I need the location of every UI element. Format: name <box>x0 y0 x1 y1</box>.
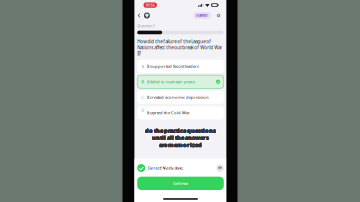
staticText: A. <box>141 64 144 69</box>
staticText: until all the answers <box>152 134 209 141</box>
staticText: until all the answers <box>152 134 209 142</box>
staticText: D. <box>141 108 144 118</box>
staticText: do the practice questions <box>145 127 216 135</box>
staticText: do the practice questions <box>145 127 216 135</box>
staticText: are memorized <box>159 141 202 149</box>
button[interactable]: C. <box>137 91 224 104</box>
staticText: are memorized <box>158 140 201 148</box>
staticText: It supported fascist leaders <box>147 63 199 69</box>
staticText: do the practice questions <box>145 127 216 134</box>
staticText: 09:56 <box>146 3 155 7</box>
staticText: Correct! Nicely done. <box>148 165 184 171</box>
staticText: until all the answers <box>153 133 210 141</box>
staticText: are memorized <box>158 141 201 148</box>
staticText: are memorized <box>159 140 202 148</box>
staticText: until all the answers <box>152 133 209 141</box>
staticText: until all the answers <box>152 133 209 141</box>
staticText: do the practice questions <box>145 127 216 134</box>
staticText: do the practice questions <box>145 127 216 134</box>
staticText: do the practice questions <box>145 127 216 134</box>
staticText: until all the answers <box>152 133 209 141</box>
staticText: do the practice questions <box>144 127 215 134</box>
staticText: do the practice questions <box>145 126 216 134</box>
staticText: do the practice questions <box>144 127 215 135</box>
staticText: until all the answers <box>153 134 210 142</box>
staticText: are memorized <box>159 141 202 149</box>
staticText: are memorized <box>158 141 201 149</box>
staticText: until all the answers <box>152 134 209 141</box>
button[interactable]: Back <box>134 10 153 20</box>
staticText: until all the answers <box>152 134 209 142</box>
staticText: do the practice questions <box>146 127 217 135</box>
staticText: do the practice questions <box>145 126 216 133</box>
staticText: are memorized <box>159 142 202 149</box>
staticText: C. <box>141 95 144 100</box>
button[interactable]: Explain answer <box>216 164 224 172</box>
staticText: until all the answers <box>152 133 209 141</box>
button[interactable]: D. <box>137 106 224 119</box>
staticText: until all the answers <box>152 134 209 142</box>
staticText: do the practice questions <box>145 126 216 133</box>
button[interactable]: SUBMIT <box>193 12 211 19</box>
staticText: Question 3 <box>137 23 155 28</box>
staticText: are memorized <box>159 142 202 149</box>
staticText: until all the answers <box>152 133 209 141</box>
staticText: are memorized <box>159 141 202 148</box>
staticText: It failed to maintain peace <box>147 79 195 84</box>
staticText: do the practice questions <box>145 126 216 134</box>
staticText: until all the answers <box>151 134 208 142</box>
button[interactable]: Continue <box>137 177 224 190</box>
staticText: It created economic depression <box>147 94 209 100</box>
staticText: are memorized <box>159 141 202 148</box>
button[interactable]: A. <box>137 60 224 73</box>
staticText: until all the answers <box>152 134 209 141</box>
staticText: How did the failure of the League of Nat… <box>137 38 222 56</box>
staticText: SUBMIT <box>196 13 208 18</box>
staticText: do the practice questions <box>145 127 216 135</box>
staticText: do the practice questions <box>144 126 215 134</box>
staticText: do the practice questions <box>145 126 216 133</box>
staticText: are memorized <box>159 140 202 148</box>
staticText: do the practice questions <box>145 127 216 135</box>
staticText: It started the Cold War <box>147 110 190 115</box>
button[interactable]: B. <box>137 75 224 88</box>
staticText: until all the answers <box>153 134 210 141</box>
staticText: are memorized <box>159 140 202 148</box>
staticText: are memorized <box>159 141 202 148</box>
staticText: until all the answers <box>151 133 208 141</box>
staticText: do the practice questions <box>145 127 216 134</box>
staticText: until all the answers <box>152 133 209 140</box>
staticText: until all the answers <box>152 134 209 142</box>
staticText: are memorized <box>159 142 202 149</box>
staticText: are memorized <box>159 141 202 148</box>
staticText: until all the answers <box>151 134 208 141</box>
staticText: do the practice questions <box>146 126 217 134</box>
button[interactable]: Settings <box>211 13 226 18</box>
staticText: do the practice questions <box>146 127 217 134</box>
staticText: are memorized <box>159 141 202 149</box>
staticText: are memorized <box>159 140 202 148</box>
staticText: until all the answers <box>152 134 209 142</box>
staticText: are memorized <box>160 141 203 148</box>
staticText: B. <box>141 79 144 84</box>
staticText: do the practice questions <box>145 126 216 134</box>
staticText: Continue <box>173 181 188 186</box>
staticText: are memorized <box>159 141 202 148</box>
staticText: until all the answers <box>152 135 209 142</box>
staticText: are memorized <box>160 140 203 148</box>
staticText: are memorized <box>160 141 203 149</box>
